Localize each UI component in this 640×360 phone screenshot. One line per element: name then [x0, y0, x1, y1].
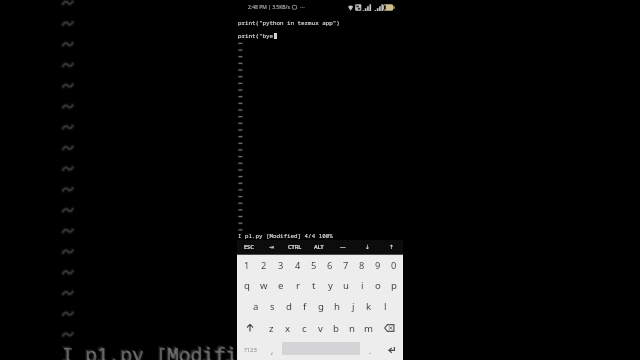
- staticText: I p1.py [Modified] 4/4 100%: [61, 340, 377, 360]
- button[interactable]: 5: [306, 255, 322, 275]
- button[interactable]: k: [361, 296, 377, 317]
- button[interactable]: 0: [386, 255, 402, 275]
- button[interactable]: l: [377, 296, 393, 317]
- button[interactable]: 6: [322, 255, 338, 275]
- button[interactable]: z: [263, 317, 280, 339]
- staticText: b: [333, 322, 339, 335]
- staticText: u: [343, 279, 349, 292]
- staticText: —: [340, 243, 346, 251]
- button[interactable]: x: [280, 317, 296, 339]
- button[interactable]: h: [329, 296, 345, 317]
- staticText: g: [318, 300, 324, 313]
- staticText: ↑: [389, 244, 394, 251]
- button[interactable]: —: [331, 240, 355, 254]
- button[interactable]: 1: [238, 255, 255, 275]
- button[interactable]: f: [297, 296, 313, 317]
- button[interactable]: ESC: [237, 240, 260, 254]
- staticText: f: [303, 300, 307, 313]
- staticText: j: [352, 300, 355, 313]
- staticText: n: [349, 322, 355, 335]
- button[interactable]: v: [312, 317, 328, 339]
- staticText: d: [286, 300, 292, 313]
- button[interactable]: n: [344, 317, 360, 339]
- button[interactable]: CTRL: [283, 240, 307, 254]
- staticText: 7: [343, 259, 349, 272]
- staticText: I p1.py [Modified] 4/4 100%: [63, 342, 379, 360]
- button[interactable]: o: [370, 275, 386, 296]
- staticText: k: [366, 300, 372, 313]
- button[interactable]: Enter: [378, 339, 403, 360]
- button[interactable]: Shift: [237, 317, 263, 339]
- button[interactable]: a: [247, 296, 264, 317]
- staticText: ,: [271, 345, 274, 356]
- button[interactable]: 3: [272, 255, 289, 275]
- button[interactable]: q: [238, 275, 255, 296]
- staticText: l: [384, 300, 387, 313]
- button[interactable]: m: [360, 317, 376, 339]
- staticText: ?123: [244, 346, 257, 354]
- staticText: •••: [300, 5, 305, 11]
- staticText: 5: [311, 259, 317, 272]
- staticText: 0: [391, 259, 397, 272]
- button[interactable]: w: [255, 275, 272, 296]
- button[interactable]: g: [313, 296, 329, 317]
- button[interactable]: p: [386, 275, 402, 296]
- staticText: 2:48 PM | 3.5KB/s: [248, 4, 290, 11]
- button[interactable]: 8: [354, 255, 370, 275]
- staticText: ALT: [314, 243, 324, 251]
- button[interactable]: r: [289, 275, 306, 296]
- staticText: print("bye: [238, 32, 274, 40]
- button[interactable]: t: [306, 275, 322, 296]
- staticText: I p1.py [Modified] 4/4 100%: [60, 339, 376, 360]
- button[interactable]: ?123: [237, 339, 264, 360]
- staticText: s: [270, 300, 275, 313]
- button[interactable]: u: [338, 275, 354, 296]
- button[interactable]: Backspace: [376, 317, 403, 339]
- staticText: c: [302, 322, 307, 335]
- button[interactable]: d: [281, 296, 297, 317]
- button[interactable]: c: [296, 317, 312, 339]
- staticText: x: [285, 322, 291, 335]
- button[interactable]: 7: [338, 255, 354, 275]
- staticText: p: [391, 279, 397, 292]
- staticText: m: [364, 322, 373, 335]
- button[interactable]: ,: [264, 339, 280, 360]
- staticText: r: [296, 279, 300, 292]
- staticText: 2: [261, 259, 267, 272]
- button[interactable]: b: [328, 317, 344, 339]
- staticText: I p1.py [Modified] 4/4 100%: [62, 341, 378, 360]
- staticText: .: [369, 345, 372, 356]
- staticText: t: [312, 279, 316, 292]
- staticText: q: [244, 279, 250, 292]
- staticText: ⇥: [269, 244, 274, 251]
- button[interactable]: i: [354, 275, 370, 296]
- button[interactable]: 4: [289, 255, 306, 275]
- button[interactable]: s: [264, 296, 281, 317]
- staticText: I p1.py [Modified] 4/4 100%: [62, 341, 378, 360]
- staticText: v: [318, 322, 323, 335]
- staticText: 8: [359, 259, 365, 272]
- button[interactable]: e: [272, 275, 289, 296]
- staticText: 1: [244, 259, 250, 272]
- staticText: 4: [295, 259, 301, 272]
- staticText: I p1.py [Modified] 4/4 100%: [238, 232, 333, 240]
- staticText: h: [334, 300, 340, 313]
- staticText: a: [253, 300, 259, 313]
- staticText: ↓: [365, 244, 370, 251]
- staticText: z: [269, 322, 274, 335]
- button[interactable]: 9: [370, 255, 386, 275]
- button[interactable]: j: [345, 296, 361, 317]
- button[interactable]: 2: [255, 255, 272, 275]
- staticText: print("python in termux app"): [238, 19, 340, 27]
- staticText: e: [278, 279, 284, 292]
- button[interactable]: ↓: [355, 240, 379, 254]
- button[interactable]: ALT: [307, 240, 331, 254]
- button[interactable]: .: [362, 339, 378, 360]
- staticText: y: [328, 279, 333, 292]
- button[interactable]: ⇥: [260, 240, 283, 254]
- button[interactable]: ↑: [379, 240, 403, 254]
- staticText: 9: [375, 259, 381, 272]
- staticText: 3: [278, 259, 284, 272]
- button[interactable]: y: [322, 275, 338, 296]
